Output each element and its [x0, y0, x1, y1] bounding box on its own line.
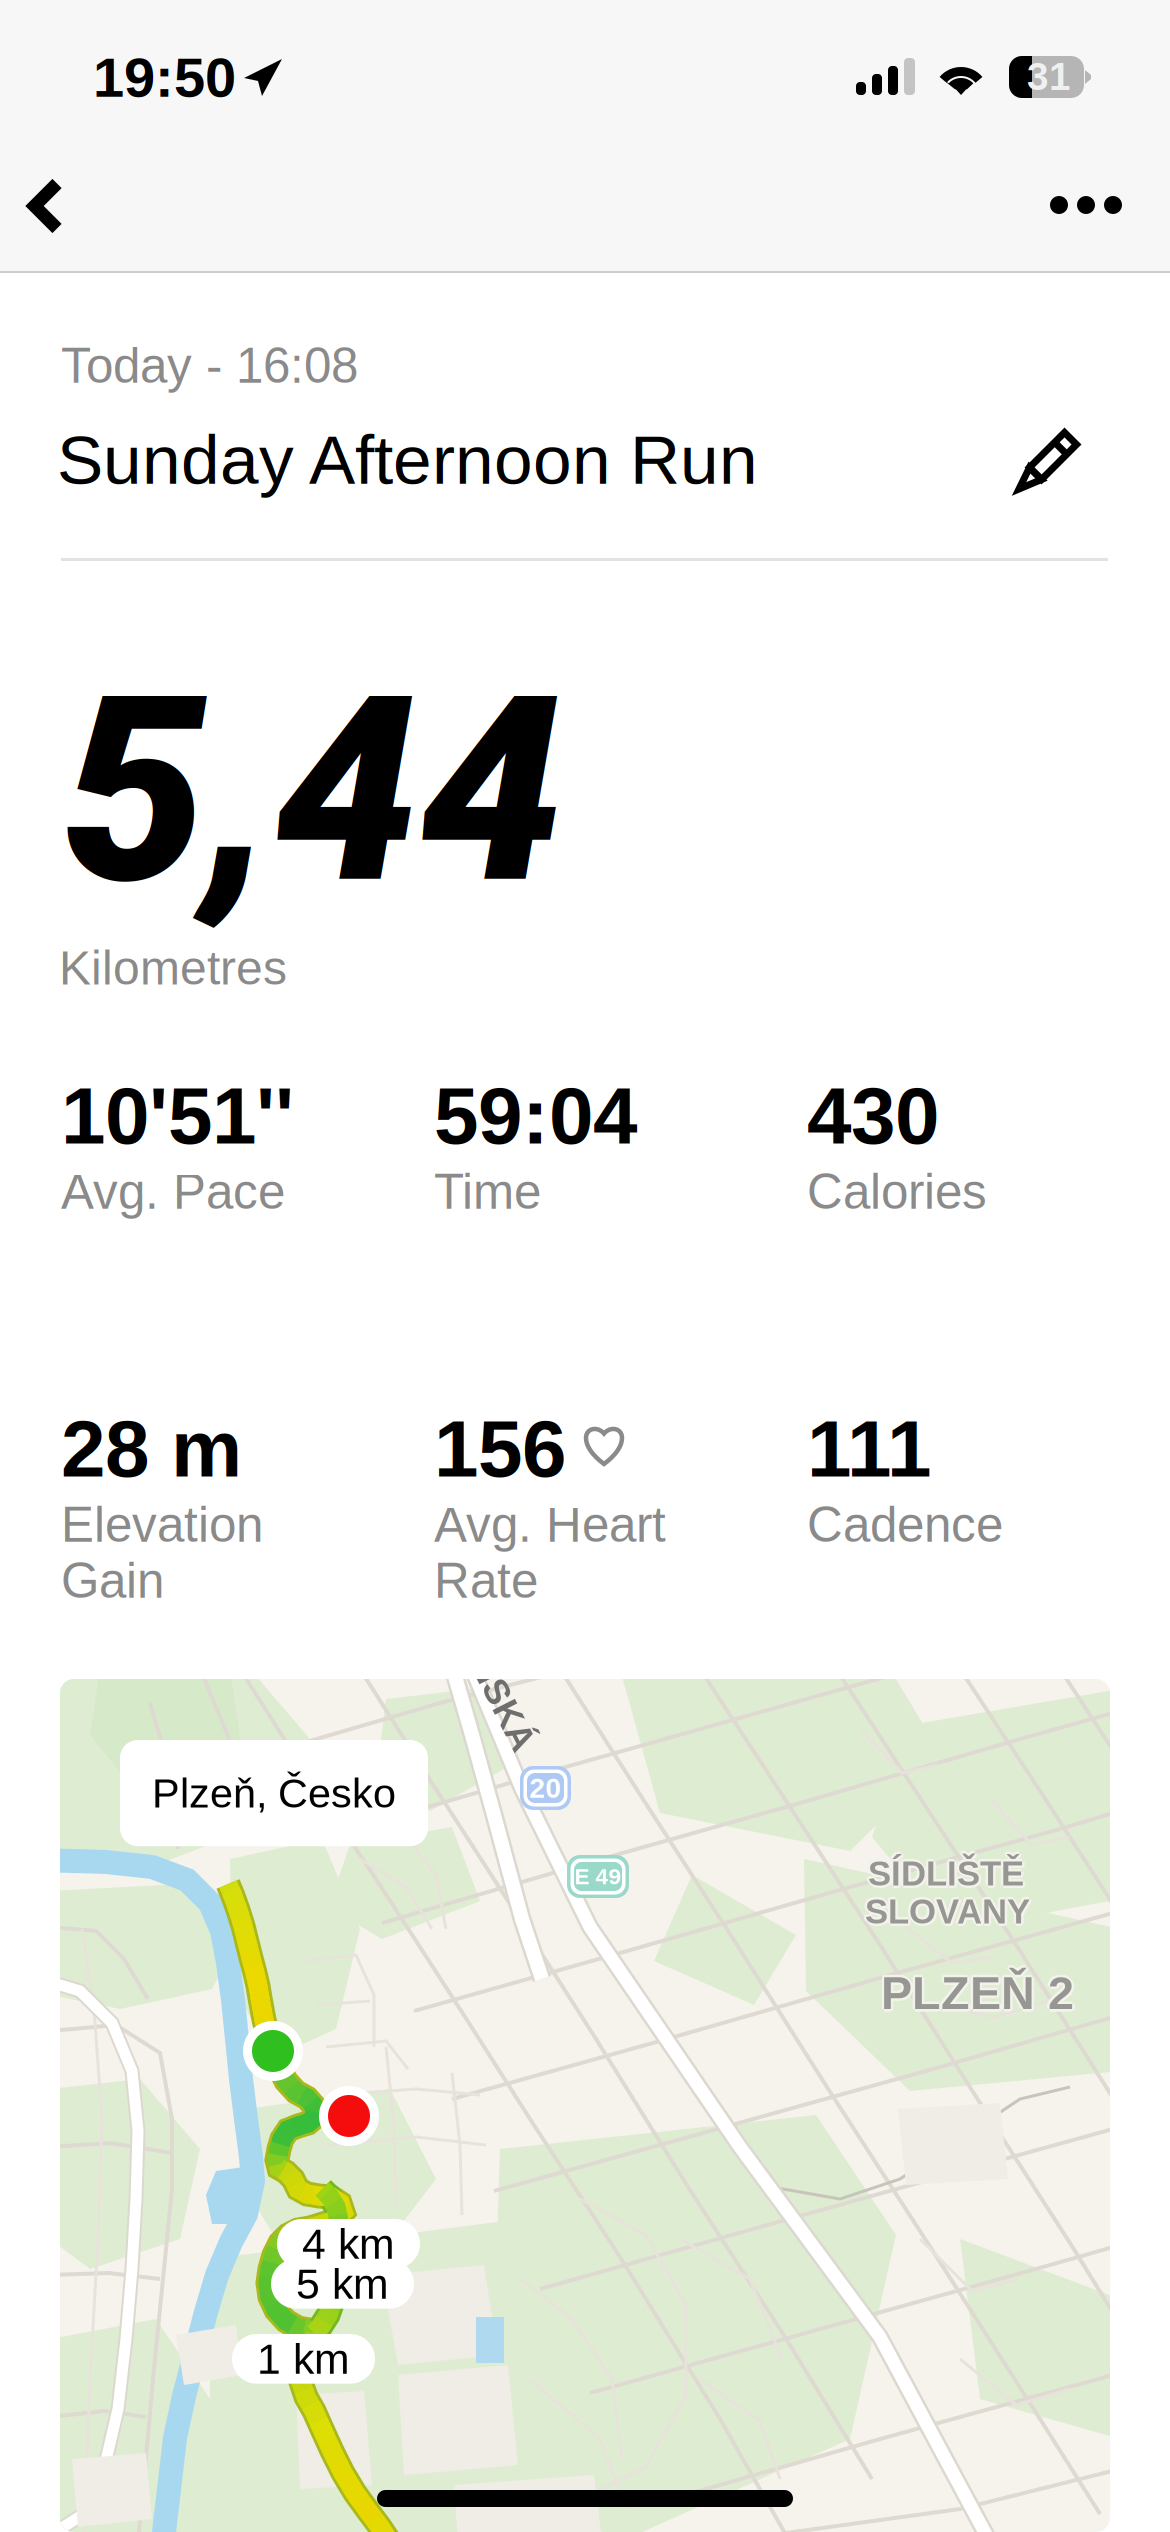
- staticText: 10'51'': [61, 1071, 294, 1160]
- staticText: 5,44: [62, 640, 564, 942]
- button[interactable]: Back: [0, 150, 108, 271]
- staticText: Time: [434, 1164, 541, 1219]
- staticText: 430: [807, 1071, 939, 1160]
- staticText: SÍDLIŠTĚ: [865, 1854, 1021, 1893]
- staticText: SLOVANY: [862, 1892, 1027, 1931]
- staticText: SÍDLIŠTĚ: [866, 1852, 1022, 1891]
- staticText: PLZEŇ 2: [883, 1967, 1076, 2019]
- staticText: Plzeň, Česko: [152, 1770, 396, 1816]
- staticText: SÍDLIŠTĚ: [868, 1851, 1024, 1890]
- staticText: SLOVANY: [865, 1889, 1030, 1928]
- staticText: SÍDLIŠTĚ: [870, 1854, 1026, 1893]
- staticText: Calories: [807, 1164, 987, 1219]
- staticText: E 49: [574, 1864, 621, 1889]
- staticText: Sunday Afternoon Run: [57, 421, 758, 498]
- staticText: SÍDLIŠTĚ: [868, 1856, 1024, 1895]
- staticText: SLOVANY: [865, 1892, 1030, 1931]
- staticText: PLZEŇ 2: [878, 1967, 1071, 2019]
- staticText: 111: [807, 1404, 931, 1493]
- staticText: Rate: [434, 1553, 538, 1608]
- staticText: Gain: [61, 1553, 164, 1608]
- staticText: 20: [529, 1772, 561, 1804]
- staticText: Avg. Pace: [61, 1164, 285, 1219]
- staticText: 31: [1027, 55, 1071, 98]
- staticText: SÍDLIŠTĚ: [868, 1854, 1024, 1893]
- button[interactable]: More options: [1025, 150, 1165, 271]
- staticText: Kilometres: [59, 941, 287, 995]
- staticText: Avg. Heart: [434, 1497, 666, 1552]
- staticText: PLZEŇ 2: [881, 1964, 1074, 2017]
- staticText: PLZEŇ 2: [883, 1969, 1076, 2021]
- staticText: SLOVANY: [867, 1894, 1032, 1933]
- staticText: 1 km: [257, 2335, 350, 2383]
- staticText: Cadence: [807, 1497, 1003, 1552]
- staticText: 5 km: [296, 2260, 389, 2308]
- staticText: NSKÁ: [452, 1683, 554, 1723]
- staticText: 156: [434, 1404, 566, 1493]
- staticText: 4 km: [302, 2220, 395, 2268]
- staticText: SÍDLIŠTĚ: [870, 1856, 1026, 1895]
- staticText: Elevation: [61, 1497, 263, 1552]
- staticText: 59:04: [434, 1071, 637, 1160]
- button[interactable]: Edit activity name: [984, 398, 1108, 522]
- staticText: PLZEŇ 2: [881, 1967, 1074, 2019]
- staticText: SLOVANY: [867, 1892, 1032, 1931]
- staticText: 28 m: [61, 1404, 242, 1493]
- staticText: Today - 16:08: [61, 338, 358, 393]
- staticText: PLZEŇ 2: [881, 1969, 1074, 2022]
- staticText: SLOVANY: [865, 1894, 1030, 1933]
- staticText: PLZEŇ 2: [879, 1965, 1072, 2017]
- staticText: 19:50: [93, 46, 236, 109]
- staticText: SLOVANY: [863, 1890, 1028, 1929]
